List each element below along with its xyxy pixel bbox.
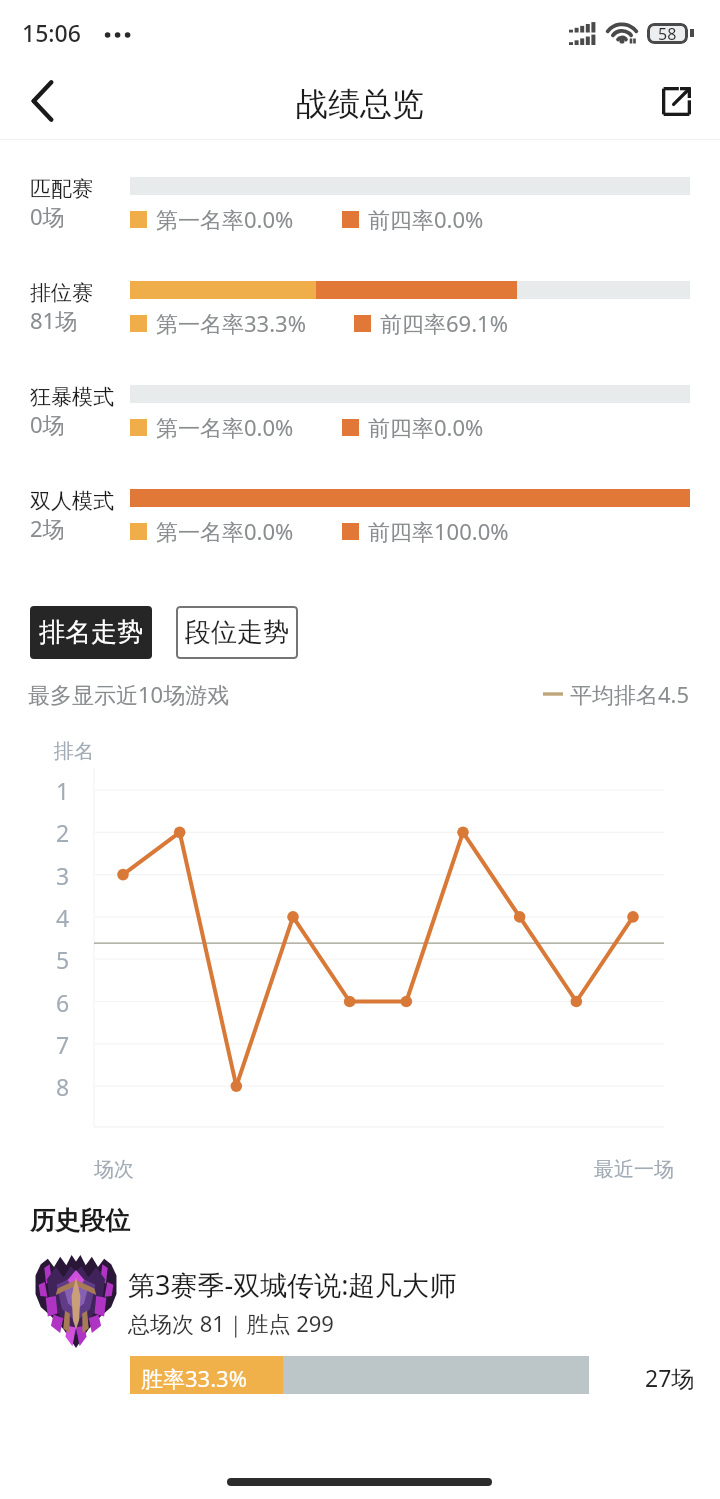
button[interactable]: 狂暴模式 [0, 371, 720, 461]
button[interactable]: 排名走势 [30, 606, 152, 659]
staticText: 最多显示近10场游戏 [28, 679, 230, 709]
staticText: 5 [56, 944, 70, 975]
staticText: 最近一场 [594, 1157, 674, 1182]
staticText: 前四率100.0% [368, 516, 509, 546]
staticText: 7 [56, 1029, 70, 1060]
staticText: 第3赛季-双城传说:超凡大师 [128, 1266, 457, 1303]
button[interactable]: 排位赛 [0, 267, 720, 357]
staticText: 15:06 [22, 17, 81, 48]
staticText: 狂暴模式 [30, 384, 114, 410]
staticText: 排位赛 [30, 280, 93, 306]
button[interactable]: 匹配赛 [0, 163, 720, 253]
button[interactable]: 双人模式 [0, 475, 720, 565]
staticText: 前四率69.1% [380, 308, 508, 338]
staticText: 2 [56, 817, 70, 848]
staticText: 双人模式 [30, 488, 114, 514]
staticText: 第一名率33.3% [156, 308, 306, 338]
staticText: 第一名率0.0% [156, 412, 294, 442]
staticText: 第一名率0.0% [156, 204, 294, 234]
staticText: 6 [56, 987, 70, 1018]
staticText: 27场 [645, 1362, 695, 1393]
staticText: 平均排名4.5 [570, 679, 690, 709]
staticText: 4 [56, 902, 70, 933]
staticText: 0场 [30, 201, 65, 231]
staticText: 0场 [30, 409, 65, 439]
button[interactable]: Back [0, 62, 80, 140]
staticText: 总场次 81｜胜点 299 [128, 1308, 334, 1338]
staticText: 前四率0.0% [368, 204, 484, 234]
staticText: 胜率33.3% [141, 1363, 247, 1393]
staticText: 3 [56, 860, 70, 891]
staticText: 战绩总览 [0, 84, 720, 124]
staticText: 历史段位 [30, 1205, 130, 1236]
button[interactable]: 段位走势 [176, 606, 298, 659]
staticText: 第一名率0.0% [156, 516, 294, 546]
staticText: 匹配赛 [30, 176, 93, 202]
staticText: 81场 [30, 305, 78, 335]
button[interactable]: Share [636, 62, 716, 140]
staticText: 排名走势 [39, 616, 143, 649]
staticText: 2场 [30, 513, 65, 543]
staticText: 段位走势 [185, 616, 289, 649]
button[interactable]: 第3赛季-双城传说:超凡大师 [0, 1248, 720, 1406]
staticText: 8 [56, 1071, 70, 1102]
staticText: 前四率0.0% [368, 412, 484, 442]
staticText: 场次 [94, 1157, 134, 1182]
staticText: 1 [56, 775, 70, 806]
staticText: 58 [658, 23, 677, 44]
staticText: 排名 [54, 739, 94, 764]
